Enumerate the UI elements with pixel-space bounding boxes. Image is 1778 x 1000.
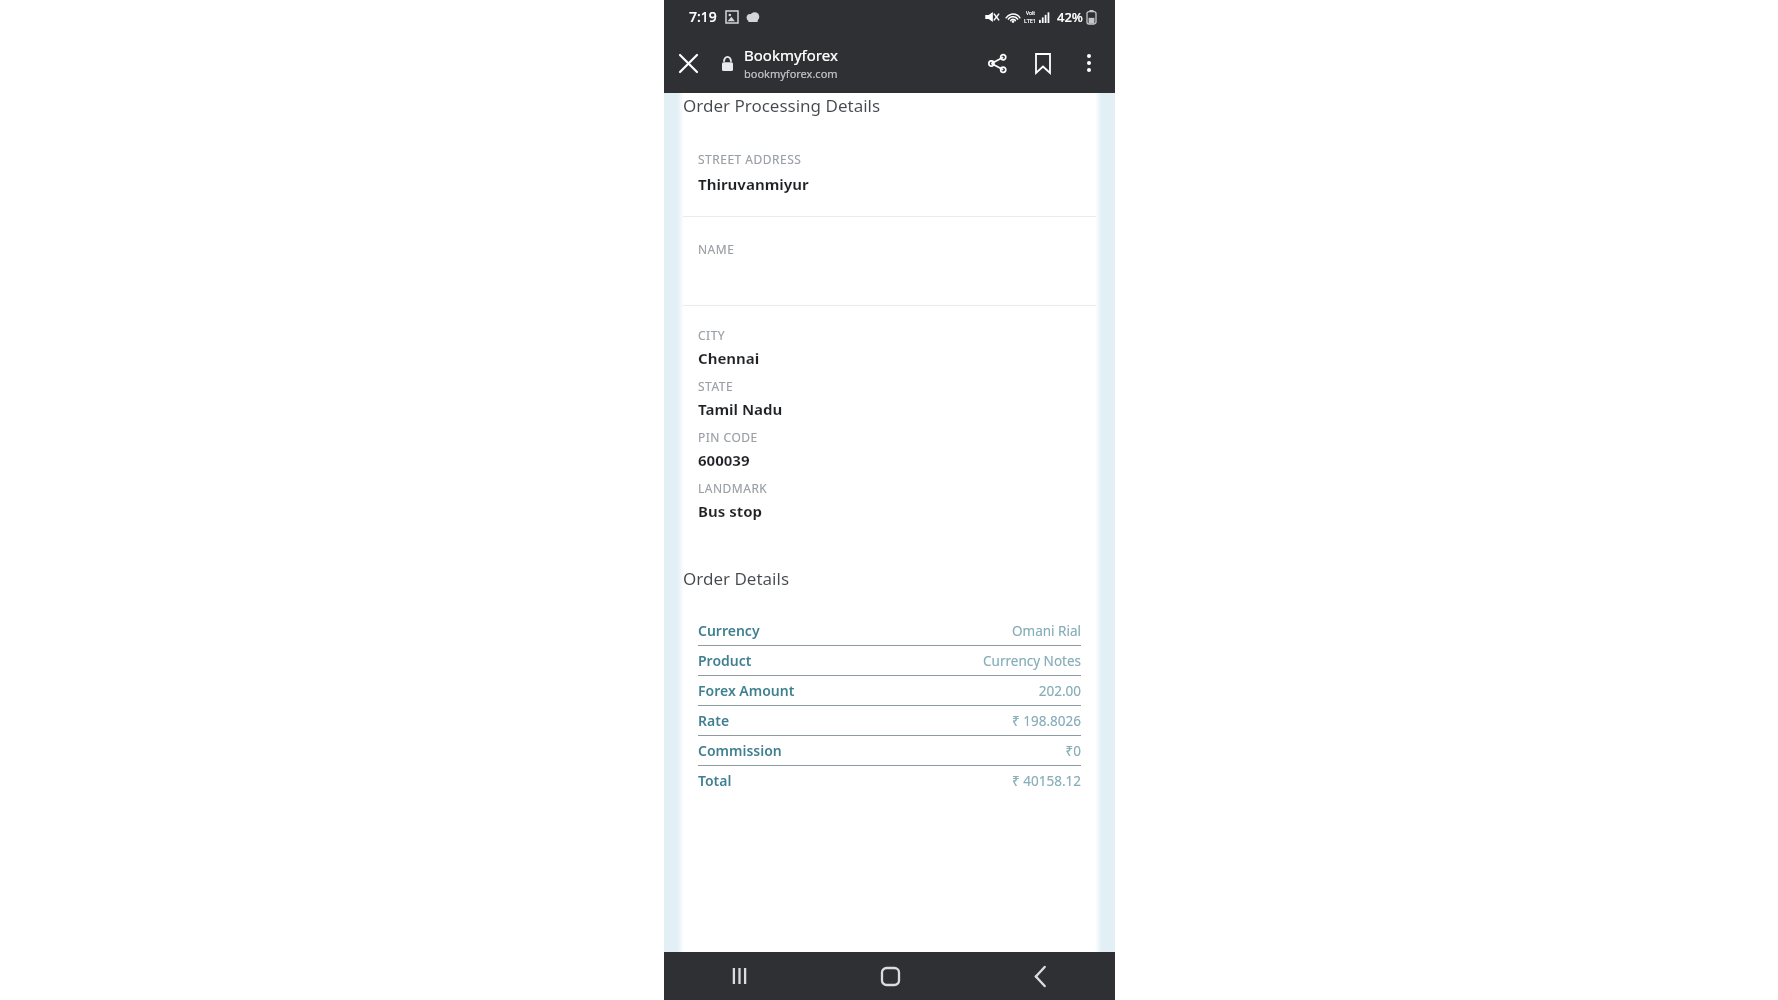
staticText: Currency [698, 621, 760, 640]
staticText: Forex Amount [698, 681, 795, 700]
button[interactable]: Commission [698, 736, 1081, 765]
staticText: Omani Rial [1011, 622, 1081, 640]
button[interactable]: Share [974, 40, 1020, 86]
staticText: Bookmyforex [744, 45, 838, 65]
staticText: PIN CODE [698, 429, 758, 445]
button[interactable]: Close [664, 39, 712, 87]
button[interactable]: Forex Amount [698, 676, 1081, 705]
staticText: ₹ 40158.12 [1012, 772, 1081, 790]
staticText: ₹ 198.8026 [1012, 712, 1081, 730]
staticText: Commission [698, 741, 782, 760]
staticText: Order Details [683, 567, 790, 590]
button[interactable]: Bookmark [1020, 40, 1066, 86]
button[interactable]: Rate [698, 706, 1081, 735]
staticText: 600039 [698, 450, 750, 470]
button[interactable]: Total [698, 766, 1081, 795]
button[interactable]: Recent apps [664, 952, 815, 1000]
button[interactable]: More options [1066, 40, 1112, 86]
staticText: 202.00 [1038, 682, 1081, 700]
button[interactable]: Back [965, 952, 1115, 1000]
button[interactable]: Currency [698, 616, 1081, 645]
staticText: STATE [698, 378, 734, 394]
staticText: Rate [698, 711, 730, 730]
staticText: Product [698, 651, 752, 670]
staticText: CITY [698, 327, 726, 343]
button[interactable]: Home [815, 952, 965, 1000]
staticText: Total [698, 771, 732, 790]
staticText: ₹0 [1065, 742, 1081, 760]
staticText: Thiruvanmiyur [698, 174, 809, 194]
staticText: Order Processing Details [683, 94, 881, 117]
staticText: 42% [1057, 8, 1083, 26]
staticText: Currency Notes [983, 652, 1081, 670]
staticText: LTE1 [1024, 17, 1037, 24]
staticText: STREET ADDRESS [698, 151, 802, 167]
staticText: LANDMARK [698, 480, 768, 496]
button[interactable]: Product [698, 646, 1081, 675]
staticText: 7:19 [689, 7, 717, 26]
staticText: Tamil Nadu [698, 399, 783, 419]
staticText: NAME [698, 241, 735, 257]
staticText: Chennai [698, 348, 760, 368]
staticText: bookmyforex.com [744, 66, 838, 81]
staticText: Bus stop [698, 501, 763, 521]
staticText: Volt [1026, 10, 1036, 17]
